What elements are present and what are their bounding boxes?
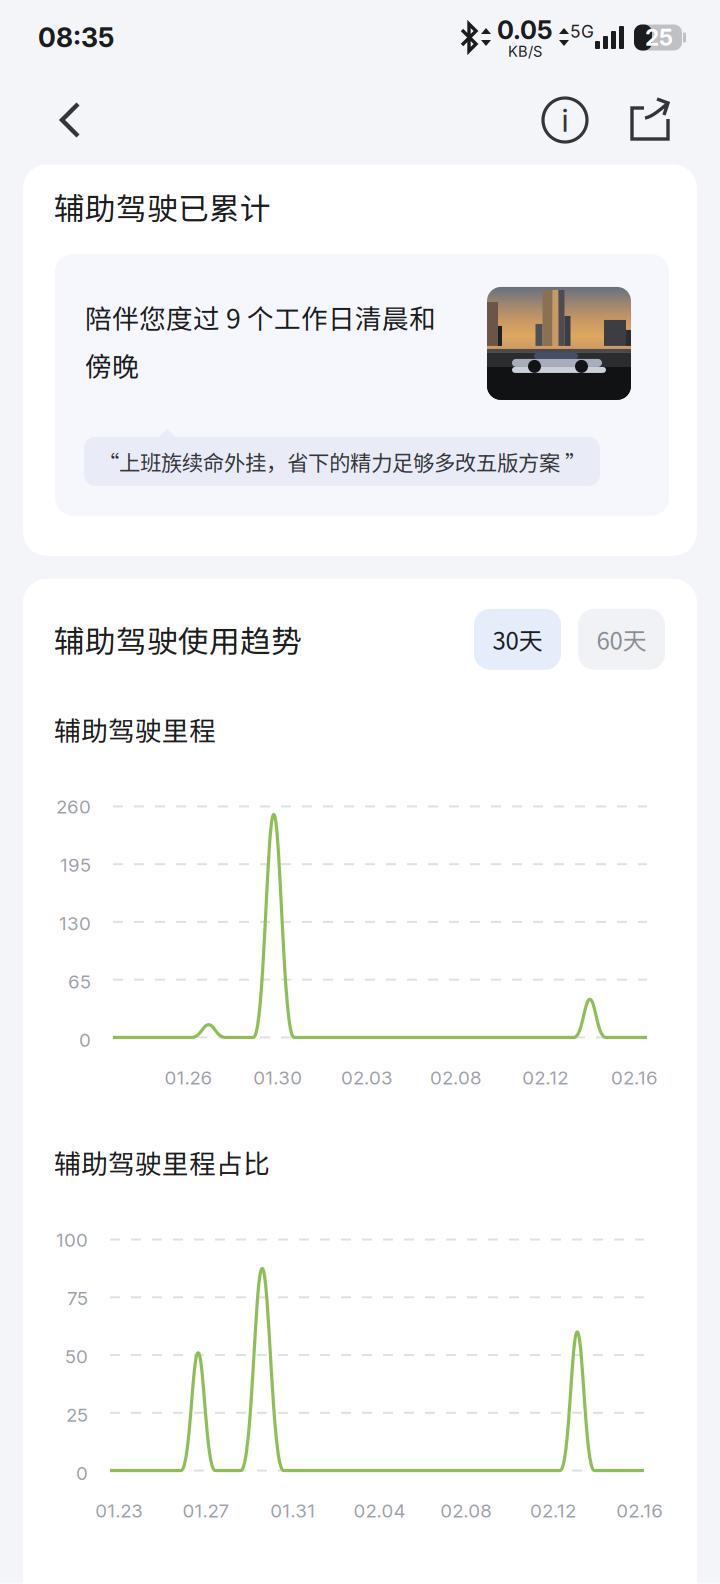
staticText: 02.16 [611,1066,658,1089]
button[interactable]: 30天 [474,609,561,670]
staticText: 60天 [596,622,646,657]
staticText: 65 [68,970,91,993]
staticText: 辅助驾驶里程占比 [54,1143,270,1181]
staticText: 辅助驾驶使用趋势 [54,617,302,661]
button[interactable]: 60天 [561,609,665,670]
staticText: 130 [59,912,91,935]
staticText: 0.05 [497,15,553,45]
staticText: 01.26 [165,1066,213,1089]
staticText: 02.16 [616,1499,663,1522]
staticText: 02.12 [530,1499,576,1522]
staticText: 260 [56,795,91,818]
staticText: 02.12 [522,1066,568,1089]
staticText: 100 [56,1228,88,1251]
staticText: 02.08 [440,1499,492,1522]
staticText: 傍晚 [85,345,139,384]
staticText: 5G [570,21,594,42]
staticText: “上班族续命外挂，省下的精力足够多改五版方案 ” [98,446,586,477]
staticText: 02.03 [341,1066,393,1089]
staticText: 陪伴您度过 9 个工作日清晨和 [85,298,436,336]
staticText: 01.30 [253,1066,302,1089]
staticText: 01.23 [95,1499,143,1522]
staticText: 75 [67,1287,88,1309]
staticText: 0 [76,1462,88,1484]
staticText: KB/S [508,42,542,60]
staticText: 01.27 [183,1499,230,1522]
staticText: 50 [65,1345,88,1368]
staticText: 25 [645,24,673,51]
staticText: 01.31 [270,1499,315,1522]
staticText: 0 [79,1029,91,1051]
staticText: 02.04 [353,1499,405,1522]
staticText: 辅助驾驶已累计 [54,184,271,229]
button[interactable]: Info [531,86,599,154]
staticText: 25 [66,1404,88,1426]
staticText: 195 [60,854,91,876]
staticText: 08:35 [38,21,114,54]
staticText: 30天 [492,622,542,657]
staticText: 02.08 [430,1066,482,1089]
button[interactable]: Back [44,88,96,152]
staticText: i [561,101,568,139]
button[interactable]: Share [599,86,684,154]
staticText: 辅助驾驶里程 [54,710,216,748]
